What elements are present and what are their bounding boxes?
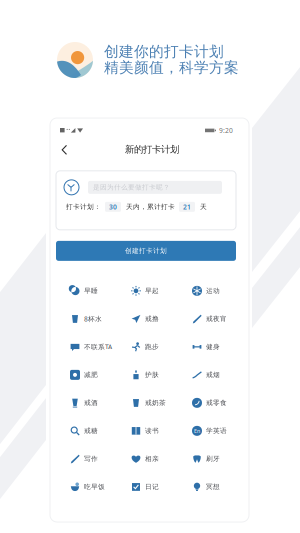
button[interactable]: 减肥: [70, 361, 131, 389]
button[interactable]: 刷牙: [192, 445, 253, 473]
button[interactable]: 护肤: [131, 361, 192, 389]
staticText: 戒烟: [206, 371, 220, 379]
staticText: 天内，累计打卡: [126, 203, 175, 211]
button[interactable]: 戒酒: [70, 389, 131, 417]
staticText: 冥想: [206, 483, 220, 491]
staticText: 21: [183, 202, 191, 211]
staticText: 学英语: [206, 427, 227, 435]
staticText: 早睡: [84, 287, 98, 295]
staticText: 刷牙: [206, 455, 220, 463]
staticText: 是因为什么要做打卡呢？: [93, 183, 170, 191]
staticText: 运动: [206, 287, 220, 295]
staticText: 创建你的打卡计划: [104, 42, 224, 60]
staticText: 戒撸: [145, 315, 159, 323]
button[interactable]: 读书: [131, 417, 192, 445]
staticText: 打卡计划：: [66, 203, 101, 211]
button[interactable]: 戒烟: [192, 361, 253, 389]
staticText: 相亲: [145, 455, 159, 463]
button[interactable]: 日记: [131, 473, 192, 501]
staticText: 不联系TA: [84, 342, 112, 351]
staticText: 9:20: [219, 126, 233, 135]
button[interactable]: 早睡: [70, 277, 131, 305]
staticText: 早起: [145, 287, 159, 295]
button[interactable]: 返回: [46, 138, 76, 161]
button[interactable]: 写作: [70, 445, 131, 473]
staticText: 戒奶茶: [145, 399, 166, 407]
staticText: 创建打卡计划: [125, 247, 167, 255]
staticText: 吃早饭: [84, 483, 105, 491]
staticText: 写作: [84, 455, 98, 463]
staticText: 戒夜宵: [206, 315, 227, 323]
button[interactable]: 不联系TA: [70, 333, 131, 361]
button[interactable]: 戒零食: [192, 389, 253, 417]
button[interactable]: En: [192, 417, 253, 445]
button[interactable]: 跑步: [131, 333, 192, 361]
staticText: 戒零食: [206, 399, 227, 407]
button[interactable]: 相亲: [131, 445, 192, 473]
staticText: 精美颜值，科学方案: [104, 58, 239, 76]
staticText: 戒糖: [84, 427, 98, 435]
staticText: 减肥: [84, 371, 98, 379]
staticText: 日记: [145, 483, 159, 491]
staticText: 健身: [206, 343, 220, 351]
button[interactable]: 戒撸: [131, 305, 192, 333]
staticText: 读书: [145, 427, 159, 435]
staticText: 8杯水: [84, 314, 102, 323]
button[interactable]: 吃早饭: [70, 473, 131, 501]
button[interactable]: 健身: [192, 333, 253, 361]
staticText: 护肤: [145, 371, 159, 379]
button[interactable]: 8杯水: [70, 305, 131, 333]
button[interactable]: 冥想: [192, 473, 253, 501]
staticText: 新的打卡计划: [125, 144, 179, 155]
button[interactable]: 戒奶茶: [131, 389, 192, 417]
button[interactable]: 创建打卡计划: [56, 241, 236, 261]
button[interactable]: 运动: [192, 277, 253, 305]
button[interactable]: 戒糖: [70, 417, 131, 445]
button[interactable]: 早起: [131, 277, 192, 305]
staticText: 天: [200, 203, 207, 211]
staticText: 跑步: [145, 343, 159, 351]
staticText: En: [194, 427, 200, 434]
staticText: 戒酒: [84, 399, 98, 407]
button[interactable]: 戒夜宵: [192, 305, 253, 333]
staticText: 30: [109, 202, 117, 211]
